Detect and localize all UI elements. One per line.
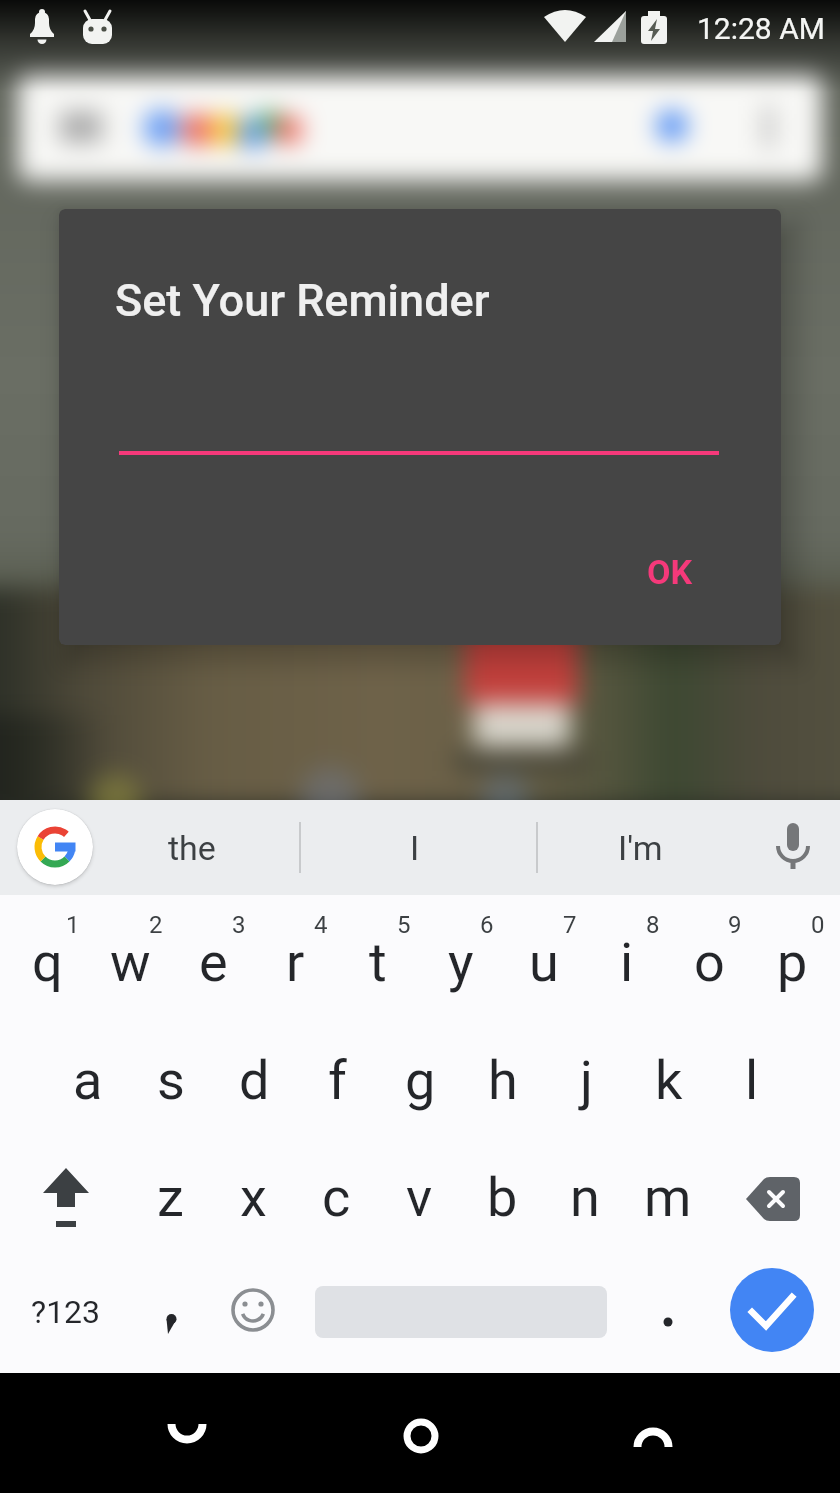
button[interactable]: v xyxy=(378,1157,460,1237)
button[interactable] xyxy=(212,1272,294,1352)
button[interactable]: I xyxy=(340,800,490,895)
staticText: v xyxy=(406,1166,433,1229)
staticText: p xyxy=(777,931,808,994)
button[interactable]: e xyxy=(172,922,254,1002)
button[interactable]: c xyxy=(295,1157,377,1237)
staticText: s xyxy=(157,1049,185,1112)
staticText: 12:28 AM xyxy=(697,11,825,46)
button[interactable] xyxy=(627,1272,709,1352)
staticText: u xyxy=(529,931,559,994)
button[interactable]: z xyxy=(129,1157,211,1237)
button[interactable]: s xyxy=(130,1040,212,1120)
staticText: q xyxy=(32,931,63,994)
staticText: y xyxy=(448,931,474,994)
staticText: l xyxy=(745,1049,759,1112)
button[interactable]: g xyxy=(379,1040,461,1120)
button[interactable]: d xyxy=(213,1040,295,1120)
button[interactable] xyxy=(755,800,833,895)
button[interactable]: I'm xyxy=(560,800,720,895)
button[interactable] xyxy=(365,1383,480,1483)
staticText: x xyxy=(240,1166,267,1229)
button[interactable]: m xyxy=(627,1157,709,1237)
button[interactable]: a xyxy=(47,1040,129,1120)
staticText: k xyxy=(655,1049,683,1112)
staticText: b xyxy=(487,1166,518,1229)
button[interactable]: j xyxy=(545,1040,627,1120)
staticText: 2 xyxy=(149,911,163,939)
button[interactable]: x xyxy=(212,1157,294,1237)
button[interactable] xyxy=(130,1383,245,1483)
button[interactable]: u xyxy=(503,922,585,1002)
button[interactable]: l xyxy=(711,1040,793,1120)
staticText: 7 xyxy=(563,911,577,939)
staticText: 9 xyxy=(728,911,742,939)
button[interactable]: b xyxy=(461,1157,543,1237)
button[interactable]: y xyxy=(420,922,502,1002)
staticText: 5 xyxy=(397,911,411,939)
staticText: r xyxy=(286,931,305,994)
staticText: g xyxy=(405,1049,436,1112)
staticText: n xyxy=(570,1166,600,1229)
staticText: OK xyxy=(647,552,693,592)
staticText: e xyxy=(199,931,228,994)
button[interactable] xyxy=(17,809,93,885)
staticText: the xyxy=(168,828,216,868)
staticText: I xyxy=(410,828,420,868)
staticText: w xyxy=(110,931,151,994)
button[interactable] xyxy=(730,1268,814,1352)
staticText: d xyxy=(239,1049,270,1112)
staticText: c xyxy=(322,1166,351,1229)
button[interactable]: i xyxy=(586,922,668,1002)
button[interactable] xyxy=(130,1272,212,1352)
staticText: o xyxy=(694,931,725,994)
staticText: I'm xyxy=(618,828,663,868)
staticText: 1 xyxy=(66,911,80,939)
staticText: j xyxy=(580,1049,593,1112)
button[interactable]: p xyxy=(751,922,833,1002)
staticText: f xyxy=(328,1049,347,1112)
staticText: 8 xyxy=(646,911,660,939)
staticText: z xyxy=(157,1166,184,1229)
staticText: h xyxy=(488,1049,518,1112)
button[interactable]: o xyxy=(668,922,750,1002)
button[interactable]: h xyxy=(462,1040,544,1120)
button[interactable]: r xyxy=(254,922,336,1002)
button[interactable]: n xyxy=(544,1157,626,1237)
button[interactable]: OK xyxy=(610,532,730,612)
button[interactable] xyxy=(725,1155,820,1240)
staticText: 0 xyxy=(811,911,825,939)
staticText: t xyxy=(369,931,387,994)
staticText: m xyxy=(644,1166,692,1229)
staticText: ?123 xyxy=(31,1293,101,1331)
button[interactable]: the xyxy=(112,800,272,895)
staticText: i xyxy=(620,931,634,994)
staticText: 3 xyxy=(232,911,246,939)
button[interactable]: w xyxy=(89,922,171,1002)
button[interactable]: k xyxy=(628,1040,710,1120)
button[interactable] xyxy=(595,1383,710,1483)
button[interactable]: ?123 xyxy=(16,1272,116,1352)
button[interactable]: t xyxy=(337,922,419,1002)
button[interactable]: q xyxy=(6,922,88,1002)
button[interactable]: f xyxy=(296,1040,378,1120)
staticText: a xyxy=(73,1049,103,1112)
button[interactable] xyxy=(20,1155,112,1240)
staticText: Set Your Reminder xyxy=(115,274,490,327)
staticText: 4 xyxy=(314,911,328,939)
staticText: 6 xyxy=(480,911,494,939)
